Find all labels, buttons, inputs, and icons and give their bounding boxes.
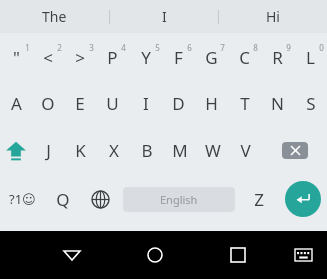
button[interactable]: Hi bbox=[219, 0, 327, 33]
button[interactable]: The bbox=[0, 0, 109, 33]
button[interactable]: English bbox=[123, 187, 235, 212]
button[interactable]: T bbox=[228, 81, 261, 126]
staticText: 3 bbox=[89, 42, 94, 53]
button[interactable]: Hide keyboard bbox=[279, 231, 327, 279]
staticText: < bbox=[43, 46, 53, 69]
staticText: T bbox=[240, 92, 250, 115]
staticText: 5 bbox=[155, 42, 160, 53]
staticText: Hi bbox=[266, 7, 280, 26]
button[interactable]: A bbox=[0, 81, 32, 126]
staticText: V bbox=[240, 139, 251, 162]
staticText: J bbox=[46, 139, 51, 162]
staticText: The bbox=[42, 7, 67, 26]
staticText: X bbox=[109, 139, 119, 162]
staticText: 6 bbox=[187, 42, 192, 53]
staticText: N bbox=[271, 92, 284, 115]
staticText: 2 bbox=[57, 42, 62, 53]
staticText: 8 bbox=[253, 42, 258, 53]
button[interactable]: " bbox=[0, 33, 32, 81]
staticText: Q bbox=[56, 188, 70, 211]
button[interactable]: N bbox=[261, 81, 294, 126]
staticText: P bbox=[107, 46, 118, 69]
staticText: ?1☺ bbox=[9, 190, 36, 208]
staticText: Z bbox=[254, 188, 264, 211]
button[interactable]: U bbox=[96, 81, 129, 126]
staticText: 7 bbox=[220, 42, 225, 53]
button[interactable]: M bbox=[163, 126, 196, 174]
staticText: 4 bbox=[121, 42, 126, 53]
button[interactable]: < bbox=[32, 33, 64, 81]
button[interactable]: I bbox=[110, 0, 218, 33]
button[interactable]: R bbox=[261, 33, 294, 81]
button[interactable]: Back bbox=[30, 231, 113, 279]
button[interactable]: J bbox=[32, 126, 64, 174]
staticText: M bbox=[172, 139, 188, 162]
button[interactable]: Z bbox=[239, 174, 279, 224]
button[interactable]: Enter bbox=[279, 174, 327, 224]
staticText: I bbox=[162, 7, 167, 26]
staticText: 1 bbox=[25, 42, 30, 53]
staticText: L bbox=[306, 46, 315, 69]
button[interactable]: S bbox=[294, 81, 327, 126]
button[interactable]: G bbox=[195, 33, 228, 81]
staticText: " bbox=[13, 46, 20, 69]
staticText: D bbox=[172, 92, 185, 115]
button[interactable]: L bbox=[294, 33, 327, 81]
button[interactable]: P bbox=[96, 33, 129, 81]
button[interactable]: K bbox=[64, 126, 97, 174]
button[interactable]: X bbox=[97, 126, 130, 174]
button[interactable]: > bbox=[64, 33, 96, 81]
staticText: W bbox=[205, 139, 221, 162]
staticText: S bbox=[306, 92, 316, 115]
staticText: 9 bbox=[286, 42, 291, 53]
staticText: I bbox=[143, 92, 149, 115]
button[interactable]: Y bbox=[129, 33, 162, 81]
button[interactable]: W bbox=[196, 126, 229, 174]
button[interactable]: Home bbox=[113, 231, 196, 279]
button[interactable]: Backspace bbox=[262, 126, 327, 174]
staticText: > bbox=[75, 46, 85, 69]
staticText: H bbox=[205, 92, 218, 115]
button[interactable]: O bbox=[32, 81, 64, 126]
staticText: O bbox=[41, 92, 55, 115]
button[interactable]: Change language bbox=[81, 174, 119, 224]
staticText: Y bbox=[141, 46, 151, 69]
staticText: K bbox=[75, 139, 86, 162]
staticText: U bbox=[106, 92, 119, 115]
button[interactable]: E bbox=[64, 81, 96, 126]
button[interactable]: Q bbox=[45, 174, 81, 224]
staticText: G bbox=[205, 46, 218, 69]
button[interactable]: F bbox=[162, 33, 195, 81]
staticText: E bbox=[75, 92, 85, 115]
button[interactable]: I bbox=[129, 81, 162, 126]
button[interactable]: C bbox=[228, 33, 261, 81]
staticText: A bbox=[11, 92, 22, 115]
staticText: English bbox=[160, 192, 198, 207]
staticText: C bbox=[239, 46, 250, 69]
button[interactable]: H bbox=[195, 81, 228, 126]
button[interactable]: D bbox=[162, 81, 195, 126]
button[interactable]: ?1☺ bbox=[0, 174, 45, 224]
button[interactable]: B bbox=[130, 126, 163, 174]
staticText: R bbox=[272, 46, 283, 69]
button[interactable]: Shift bbox=[0, 126, 32, 174]
button[interactable]: V bbox=[229, 126, 262, 174]
staticText: F bbox=[174, 46, 183, 69]
button[interactable]: Recents bbox=[196, 231, 279, 279]
staticText: B bbox=[141, 139, 153, 162]
staticText: 0 bbox=[319, 42, 324, 53]
